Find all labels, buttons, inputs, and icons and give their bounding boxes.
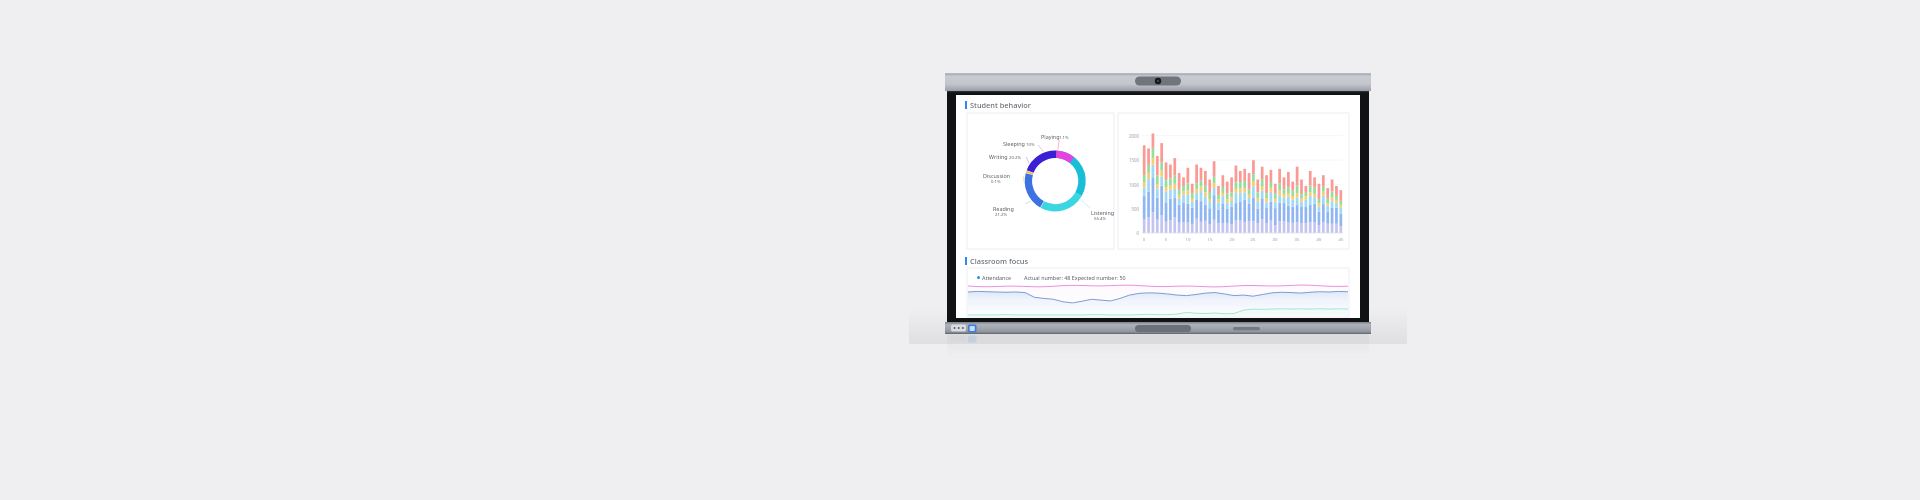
staticText: 1000: [1120, 182, 1139, 188]
staticText: 10%: [1026, 141, 1035, 147]
staticText: 0.1%: [991, 178, 1001, 184]
staticText: Classroom focus: [970, 256, 1029, 266]
staticText: 1500: [1120, 157, 1139, 163]
staticText: 0: [1120, 230, 1139, 236]
staticText: Actual number: 48 Expected number: 50: [1024, 274, 1126, 281]
staticText: Discussion: [983, 172, 1010, 179]
staticText: 21.2%: [995, 211, 1008, 217]
staticText: 56.4%: [1094, 215, 1107, 221]
staticText: Writing: [989, 153, 1008, 160]
button[interactable]: Student behavior distribution donut char…: [967, 113, 1114, 249]
staticText: 0: [1139, 237, 1149, 243]
staticText: 1.1%: [1059, 134, 1069, 140]
staticText: 20.2%: [1009, 154, 1022, 160]
staticText: 500: [1120, 206, 1139, 212]
staticText: Sleeping: [1003, 140, 1025, 147]
staticText: Playing: [1041, 133, 1060, 140]
staticText: Attendance: [982, 274, 1012, 281]
staticText: Student behavior: [970, 100, 1031, 110]
staticText: Reading: [993, 205, 1014, 212]
staticText: 30: [1270, 237, 1280, 243]
staticText: 20: [1227, 237, 1237, 243]
button[interactable]: Classroom focus: [965, 256, 1029, 266]
staticText: 10: [1183, 237, 1193, 243]
staticText: 5: [1161, 237, 1171, 243]
staticText: 25: [1248, 237, 1258, 243]
staticText: Listening: [1091, 209, 1115, 216]
button[interactable]: Student behavior: [965, 100, 1031, 110]
button[interactable]: Student behavior over time bar chart: [1118, 113, 1349, 249]
staticText: 40: [1314, 237, 1324, 243]
staticText: 15: [1205, 237, 1215, 243]
staticText: 45: [1336, 237, 1346, 243]
staticText: 35: [1292, 237, 1302, 243]
button[interactable]: Classroom focus attendance chart: [967, 268, 1349, 317]
staticText: 2000: [1120, 133, 1139, 139]
